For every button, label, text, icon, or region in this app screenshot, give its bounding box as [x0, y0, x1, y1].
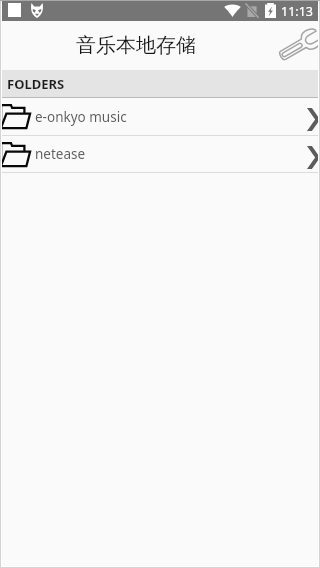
staticText: FOLDERS	[7, 75, 65, 93]
button[interactable]: netease	[0, 136, 320, 172]
staticText: e-onkyo music	[35, 108, 127, 126]
staticText: 音乐本地存储	[76, 33, 196, 58]
button[interactable]: Settings	[274, 24, 320, 68]
staticText: netease	[35, 145, 86, 163]
button[interactable]: e-onkyo music	[0, 98, 320, 135]
staticText: 11:13	[281, 3, 313, 20]
